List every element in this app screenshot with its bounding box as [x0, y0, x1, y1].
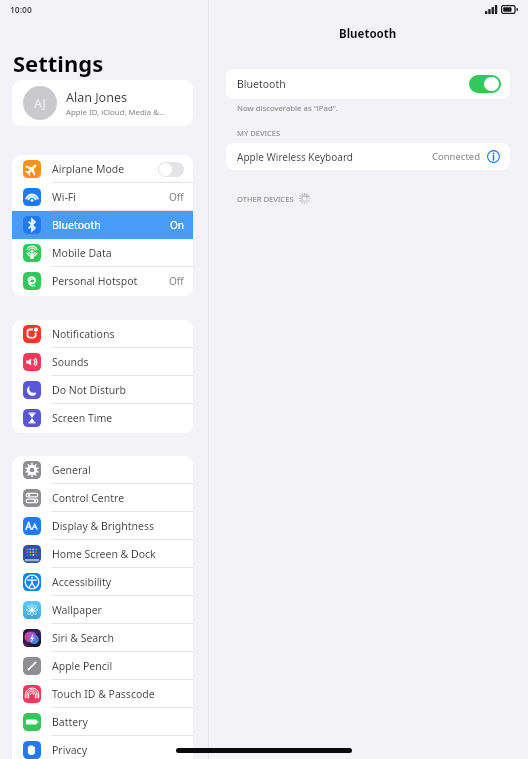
staticText: Touch ID & Passcode	[52, 687, 184, 701]
staticText: Apple Pencil	[52, 659, 184, 673]
button[interactable]: Notifications	[12, 320, 193, 348]
staticText: Privacy	[52, 743, 184, 757]
staticText: OTHER DEVICES	[237, 194, 294, 204]
staticText: Battery	[52, 715, 184, 729]
staticText: Screen Time	[52, 411, 184, 425]
staticText: Do Not Disturb	[52, 383, 184, 397]
staticText: Connected	[432, 150, 481, 163]
button[interactable]: Airplane Mode toggle	[158, 162, 184, 177]
button[interactable]: Battery	[12, 708, 193, 736]
staticText: Settings	[13, 48, 104, 78]
staticText: Bluetooth	[52, 218, 170, 232]
staticText: Wallpaper	[52, 603, 184, 617]
staticText: Bluetooth	[237, 77, 286, 91]
staticText: Mobile Data	[52, 246, 184, 260]
button[interactable]: Sounds	[12, 348, 193, 376]
staticText: AJ	[34, 95, 47, 112]
staticText: On	[170, 218, 184, 232]
button[interactable]: Display & Brightness	[12, 512, 193, 540]
staticText: Off	[169, 190, 184, 204]
button[interactable]: General	[12, 456, 193, 484]
staticText: General	[52, 463, 184, 477]
button[interactable]: Siri & Search	[12, 624, 193, 652]
staticText: Notifications	[52, 327, 184, 341]
button[interactable]: Airplane Mode	[12, 155, 193, 183]
staticText: Alan Jones	[66, 89, 127, 106]
button[interactable]: Screen Time	[12, 404, 193, 432]
button[interactable]: Apple Wireless Keyboard	[226, 143, 510, 170]
button[interactable]: AJ	[12, 80, 193, 126]
button[interactable]: Bluetooth	[226, 69, 510, 99]
staticText: Siri & Search	[52, 631, 184, 645]
staticText: Now discoverable as "iPad".	[237, 103, 338, 114]
button[interactable]: Bluetooth toggle on	[469, 75, 501, 93]
button[interactable]: More info	[487, 150, 500, 163]
staticText: Personal Hotspot	[52, 274, 169, 288]
staticText: Airplane Mode	[52, 162, 158, 176]
staticText: Apple ID, iCloud, Media &…	[66, 107, 166, 118]
button[interactable]: Privacy	[12, 736, 193, 759]
staticText: MY DEVICES	[237, 128, 281, 138]
button[interactable]: Wallpaper	[12, 596, 193, 624]
staticText: Bluetooth	[339, 26, 397, 42]
button[interactable]: Touch ID & Passcode	[12, 680, 193, 708]
button[interactable]: Home Screen & Dock	[12, 540, 193, 568]
staticText: Accessibility	[52, 575, 184, 589]
button[interactable]: Mobile Data	[12, 239, 193, 267]
staticText: Apple Wireless Keyboard	[237, 150, 432, 164]
staticText: Off	[169, 274, 184, 288]
staticText: Display & Brightness	[52, 519, 184, 533]
staticText: Wi-Fi	[52, 190, 169, 204]
button[interactable]: Control Centre	[12, 484, 193, 512]
button[interactable]: Accessibility	[12, 568, 193, 596]
button[interactable]: Bluetooth	[12, 211, 193, 239]
staticText: Sounds	[52, 355, 184, 369]
button[interactable]: Do Not Disturb	[12, 376, 193, 404]
button[interactable]: Wi-Fi	[12, 183, 193, 211]
button[interactable]: Apple Pencil	[12, 652, 193, 680]
button[interactable]: Personal Hotspot	[12, 267, 193, 295]
staticText: Control Centre	[52, 491, 184, 505]
staticText: 10:00	[10, 4, 32, 16]
staticText: Home Screen & Dock	[52, 547, 184, 561]
